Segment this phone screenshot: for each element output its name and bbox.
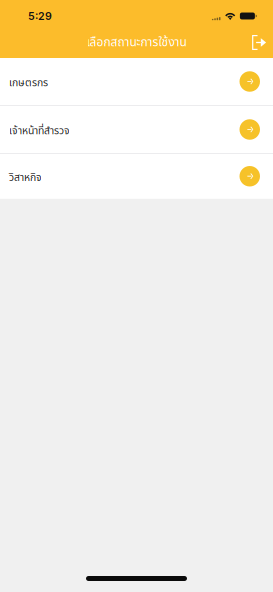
staticText: 5:29 bbox=[28, 9, 52, 22]
staticText: เจ้าหน้าที่สำรวจ bbox=[9, 123, 70, 139]
button[interactable]: เจ้าหน้าที่สำรวจ bbox=[0, 106, 273, 153]
staticText: เกษตรกร bbox=[9, 75, 48, 91]
button[interactable]: วิสาหกิจ bbox=[0, 154, 273, 198]
staticText: วิสาหกิจ bbox=[9, 170, 42, 186]
staticText: เลือกสถานะการใช้งาน bbox=[86, 33, 186, 51]
button[interactable]: เกษตรกร bbox=[0, 58, 273, 105]
button[interactable]: Log out bbox=[242, 27, 273, 58]
